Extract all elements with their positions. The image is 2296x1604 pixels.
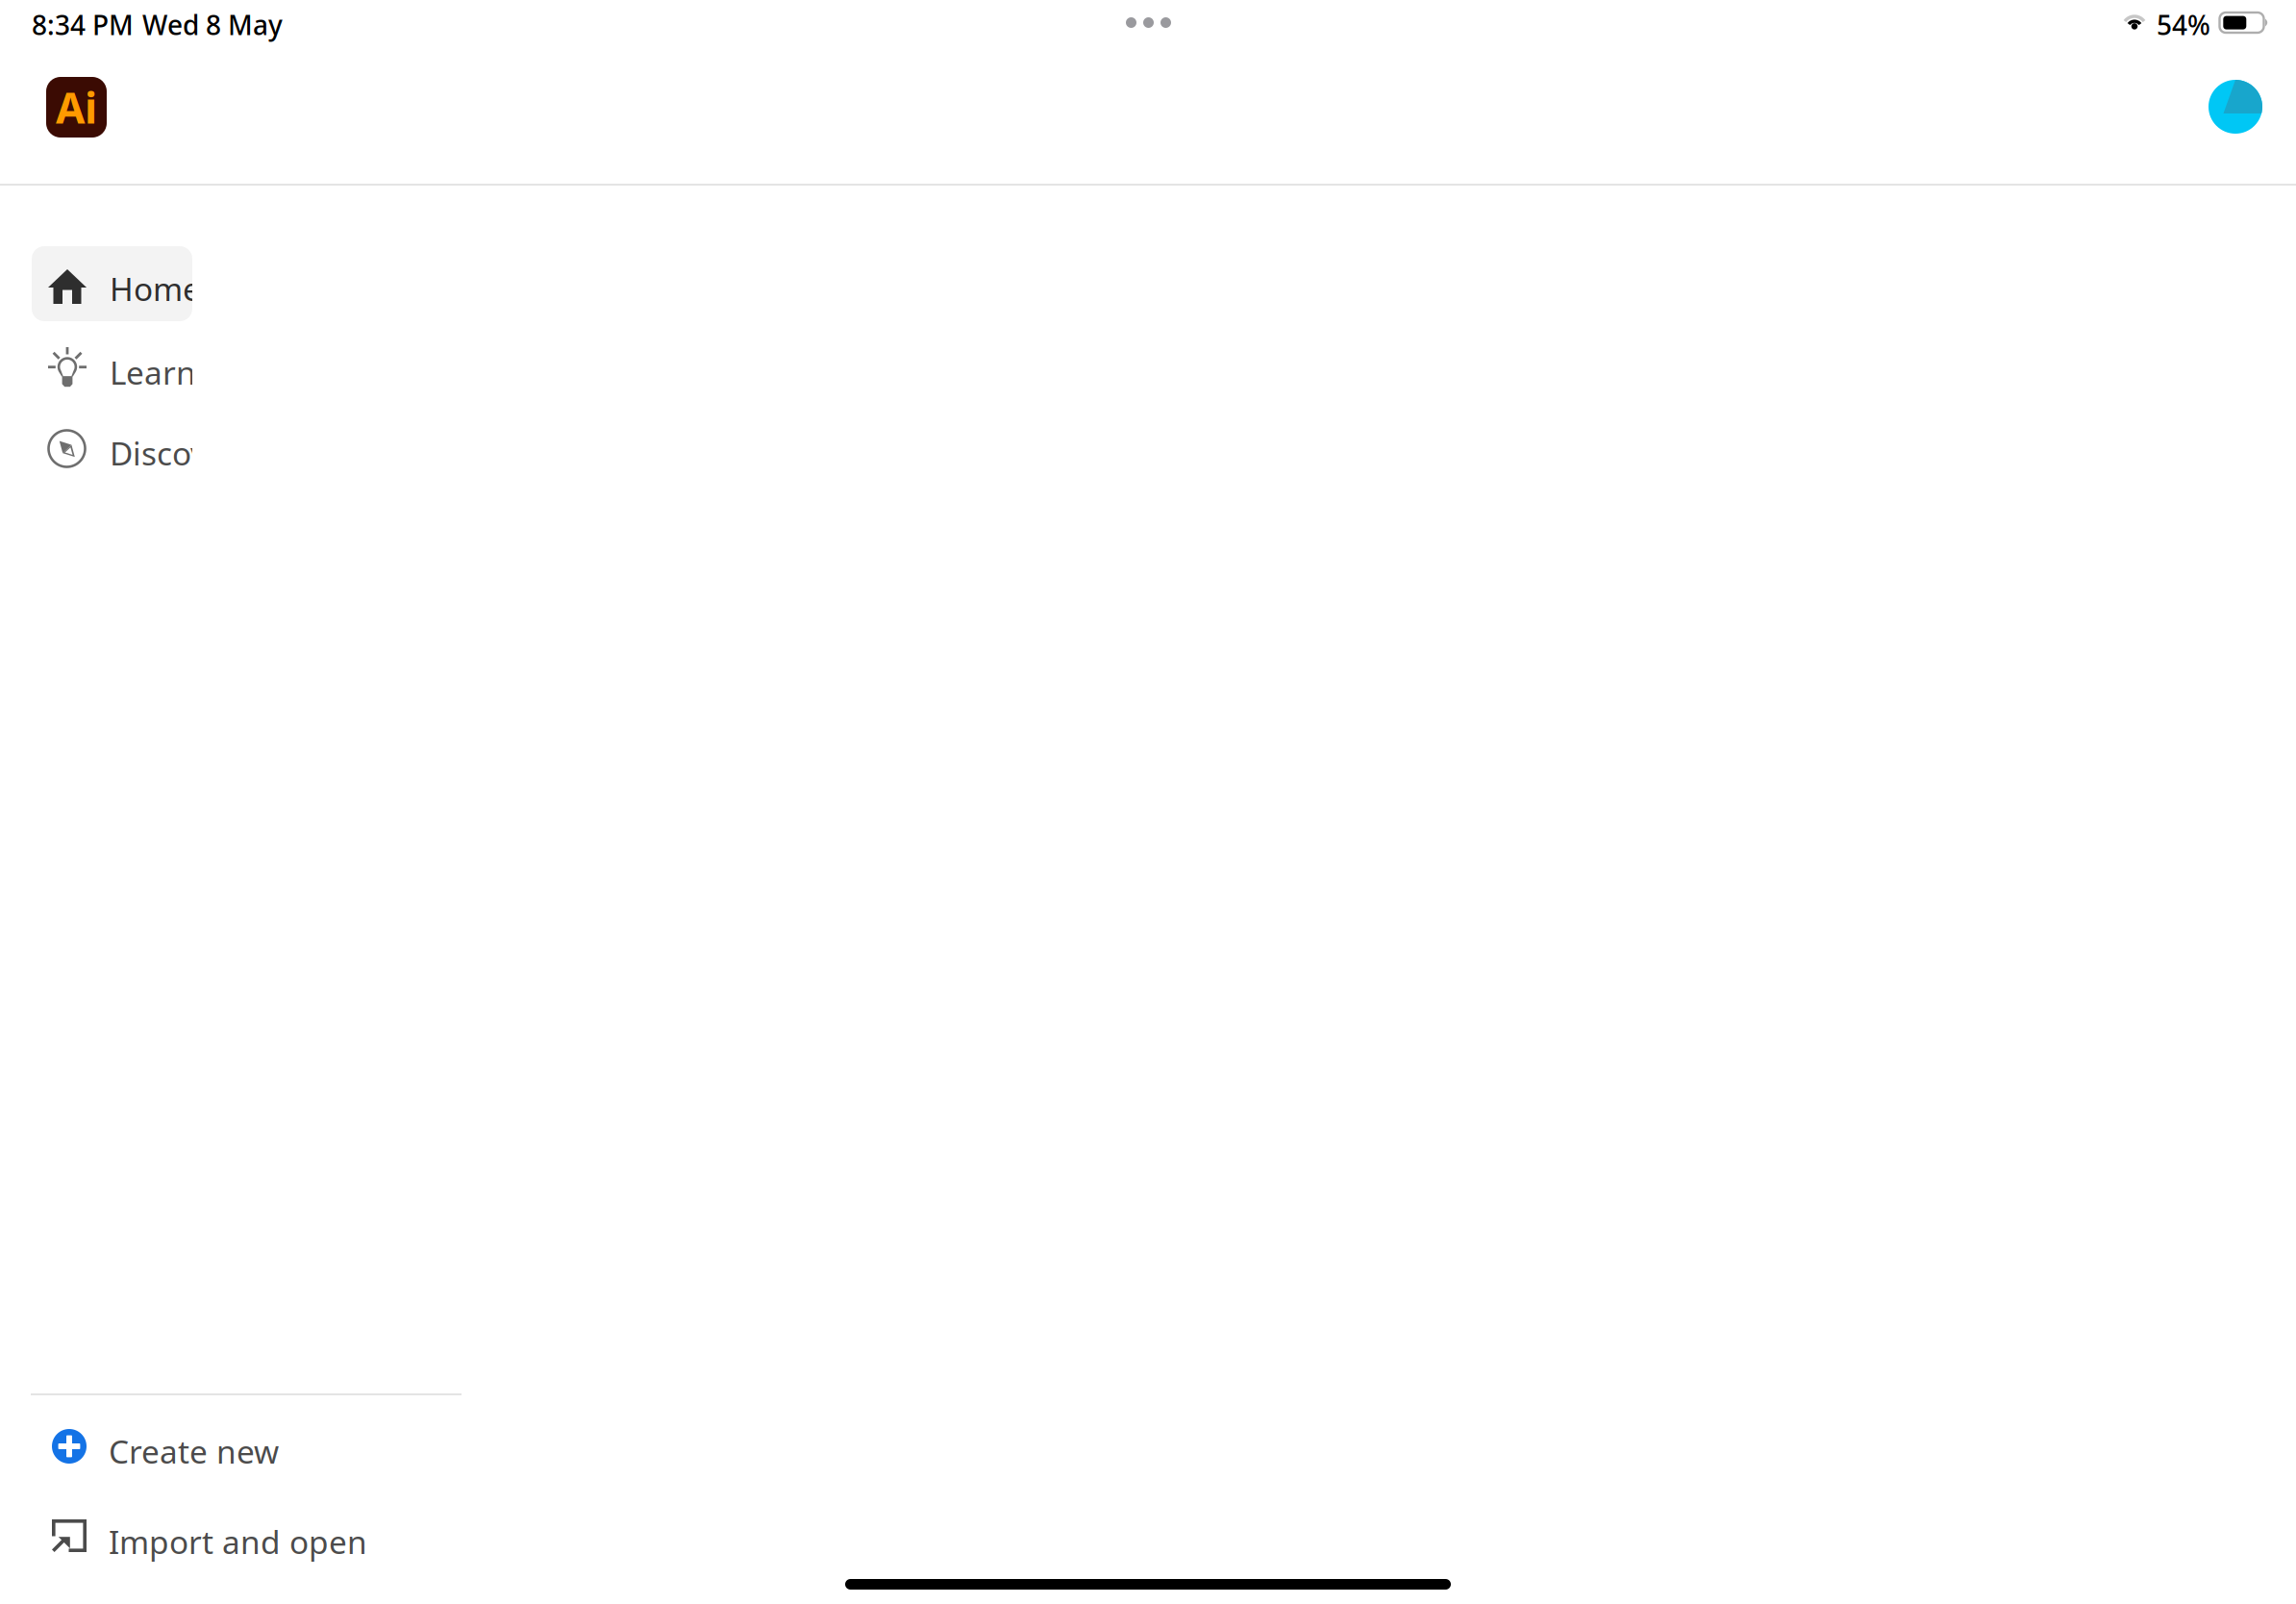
button[interactable]: Learn (32, 330, 192, 405)
staticText: Home (110, 267, 201, 310)
button[interactable]: Import and open (32, 1508, 442, 1566)
staticText: Wed 8 May (142, 7, 283, 43)
staticText: Learn (110, 351, 196, 393)
staticText: Discover (110, 432, 238, 474)
button[interactable]: Create new (32, 1417, 442, 1475)
staticText: Ai (56, 79, 97, 135)
button[interactable]: Illustrator (46, 77, 107, 138)
button[interactable]: Account (2209, 80, 2262, 134)
staticText: 8:34 PM (32, 7, 134, 43)
button[interactable]: Discover (32, 411, 192, 486)
staticText: 54% (2157, 7, 2210, 43)
button[interactable]: Home (32, 246, 192, 321)
staticText: Create new (109, 1430, 279, 1472)
staticText: Import and open (109, 1520, 367, 1563)
